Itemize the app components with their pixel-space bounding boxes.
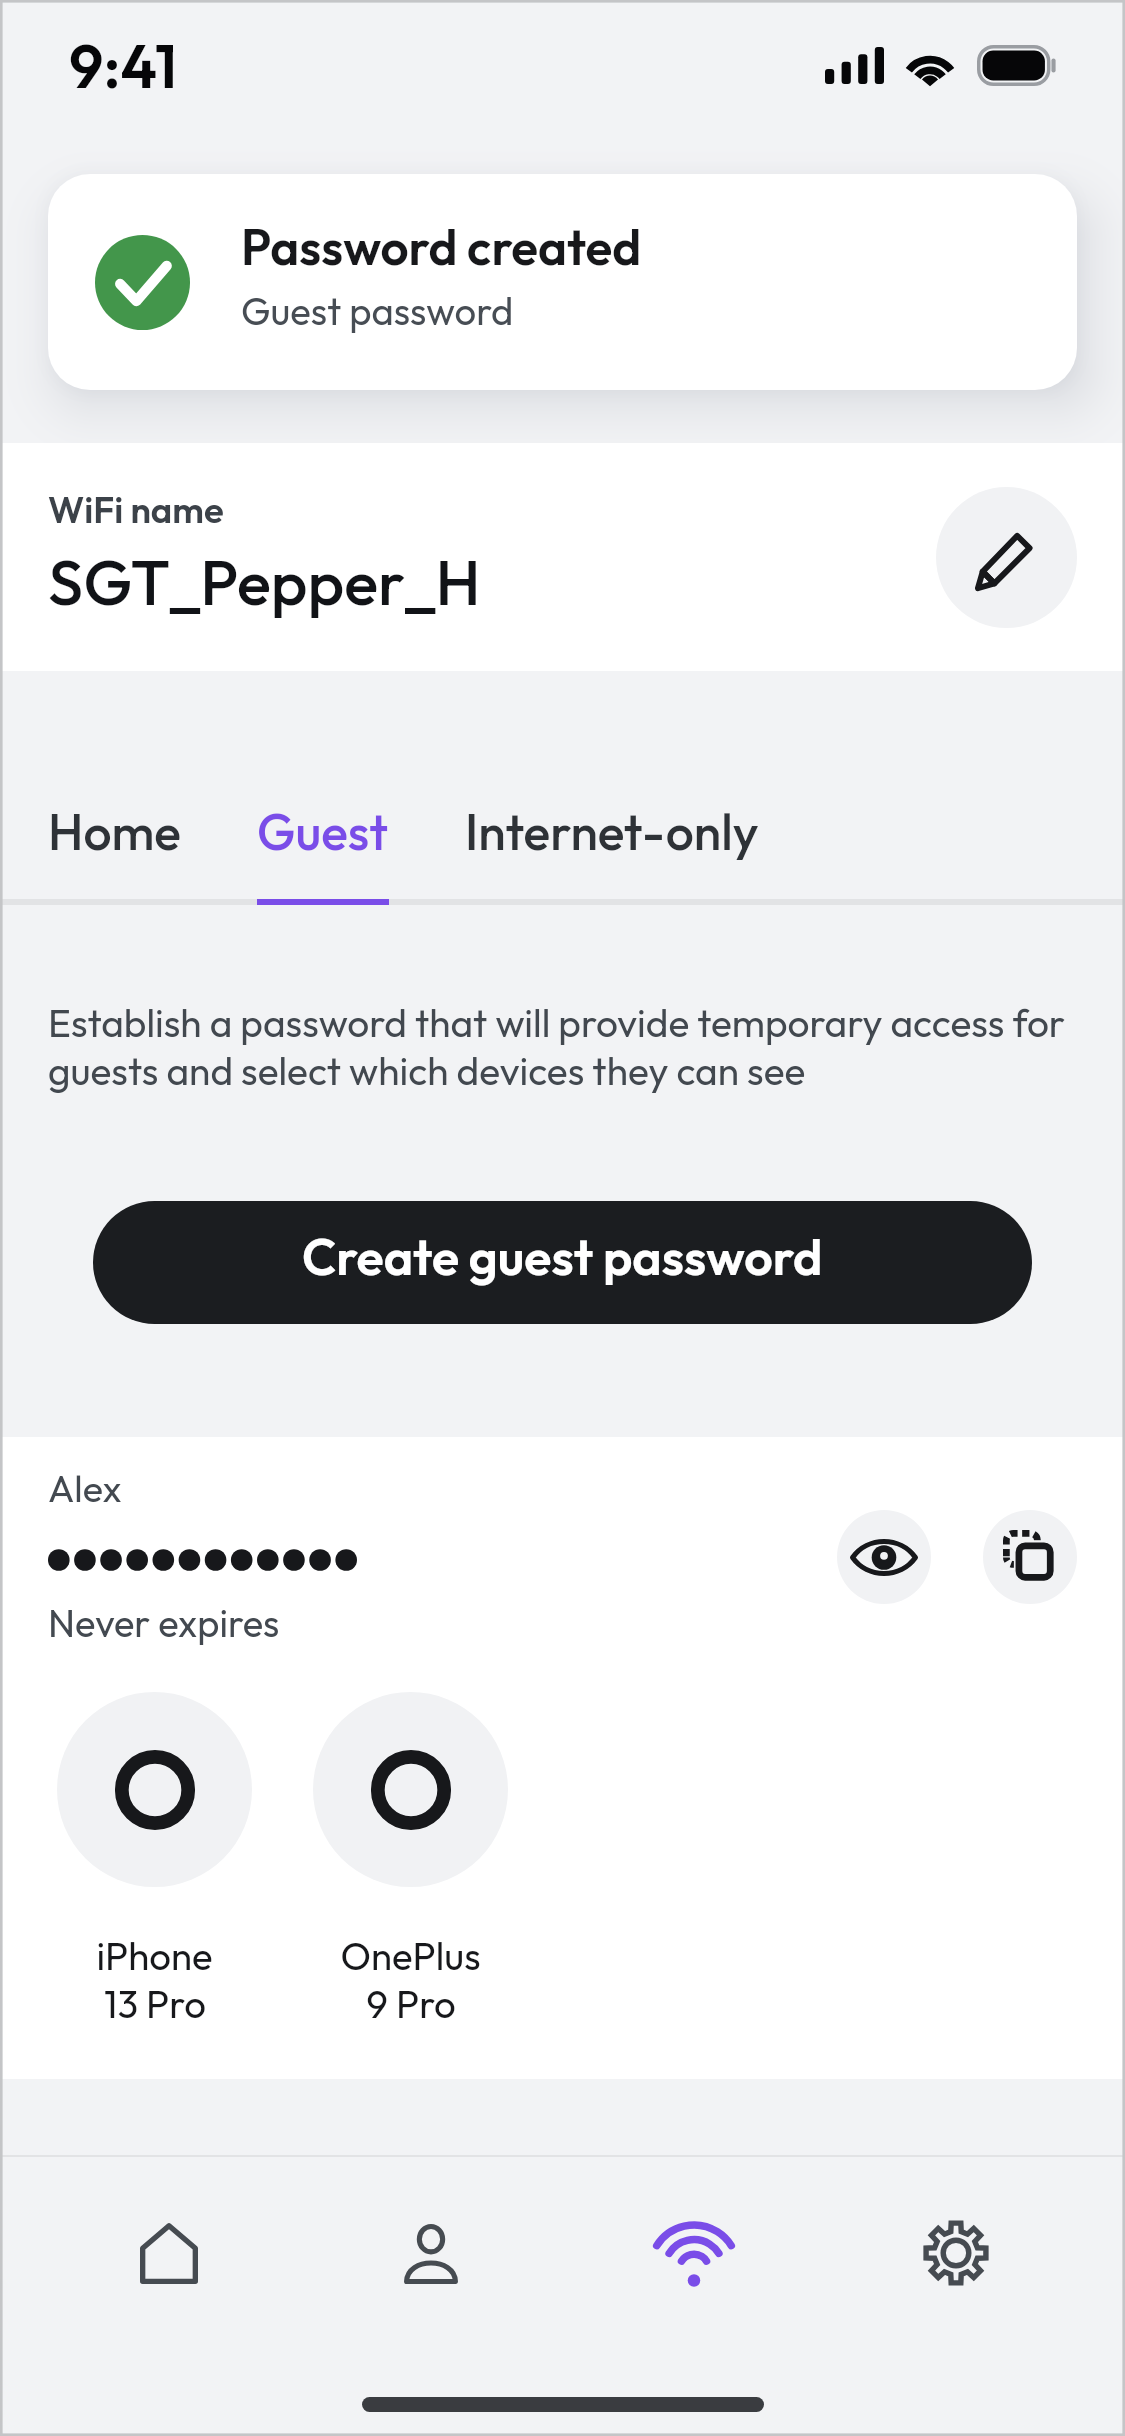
button[interactable]: Home [43,800,186,905]
staticText: iPhone [96,1932,213,1980]
staticText: Create guest password [302,1225,823,1288]
button[interactable]: Edit WiFi name [936,487,1077,628]
button[interactable]: Create guest password [93,1201,1032,1324]
button[interactable]: Profile [337,2187,525,2319]
button[interactable]: Home [75,2187,263,2319]
staticText: Internet-only [465,800,759,863]
button[interactable]: Password created [48,174,1077,390]
staticText: 9:41 [69,27,178,103]
button[interactable]: OnePlus [313,1692,508,2028]
button[interactable]: Show password [837,1510,931,1604]
staticText: Password created [241,216,642,278]
button[interactable]: Guest [252,800,394,905]
staticText: 9 Pro [366,1980,456,2028]
button[interactable]: Internet-only [460,800,764,905]
staticText: Guest [257,800,389,863]
staticText: Guest password [241,287,514,335]
staticText: Home [48,800,181,863]
staticText: 13 Pro [104,1980,206,2028]
staticText: OnePlus [340,1932,481,1980]
staticText: Never expires [48,1599,280,1647]
staticText: WiFi name [48,487,224,533]
button[interactable]: Settings [862,2187,1050,2319]
button[interactable]: iPhone [57,1692,252,2028]
staticText: Establish a password that will provide t… [48,998,1077,1095]
staticText: Alex [48,1464,122,1512]
button[interactable]: Copy password [983,1510,1077,1604]
staticText: SGT_Pepper_H [48,542,481,622]
button[interactable]: WiFi [600,2187,788,2319]
